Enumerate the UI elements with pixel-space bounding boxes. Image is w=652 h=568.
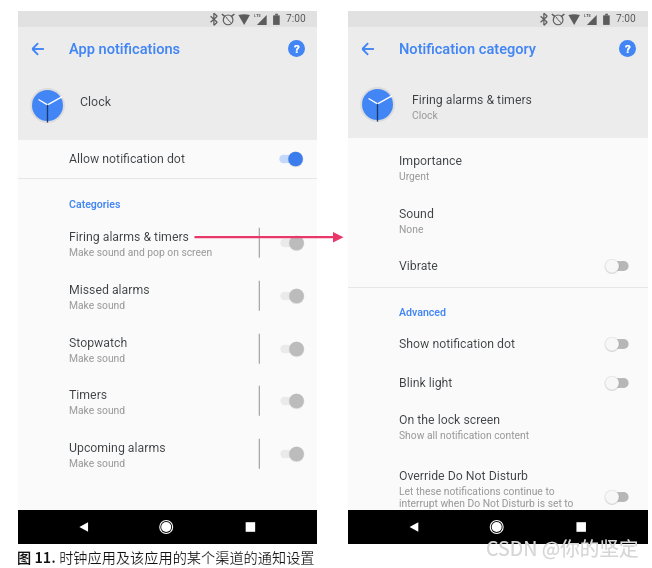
staticText: interrupt when Do Not Disturb is set to	[399, 497, 574, 509]
button[interactable]: Importance	[348, 153, 648, 198]
staticText: App notifications	[69, 40, 181, 57]
button[interactable]: Navigate up	[355, 36, 381, 62]
staticText: Clock	[412, 109, 438, 121]
button[interactable]: Upcoming alarms	[280, 446, 304, 462]
button[interactable]: Timers	[280, 393, 304, 409]
button[interactable]: Navigate up	[25, 36, 51, 62]
staticText: ?	[294, 42, 300, 55]
staticText: Override Do Not Disturb	[399, 469, 528, 483]
staticText: 7:00	[616, 13, 636, 25]
button[interactable]: Allow notification dot	[279, 151, 303, 167]
staticText: Categories	[69, 198, 121, 210]
button[interactable]: Missed alarms	[18, 282, 317, 330]
staticText: Show notification dot	[399, 337, 515, 351]
staticText: Notification category	[399, 40, 536, 57]
staticText: Sound	[399, 207, 434, 221]
button[interactable]: Recents	[229, 510, 269, 544]
button[interactable]: Show notification dot	[348, 332, 648, 366]
staticText: Make sound	[69, 352, 126, 364]
button[interactable]: Recents	[560, 510, 600, 544]
button[interactable]: On the lock screen	[348, 412, 648, 457]
button[interactable]: Sound	[348, 206, 648, 251]
button[interactable]: Timers	[18, 387, 317, 435]
button[interactable]: Firing alarms & timers	[348, 70, 648, 138]
button[interactable]: Clock	[18, 70, 317, 140]
staticText: None	[399, 223, 424, 235]
button[interactable]: Override Do Not Disturb	[348, 468, 648, 512]
button[interactable]: Firing alarms & timers	[280, 235, 304, 251]
button[interactable]: Stopwatch	[280, 341, 304, 357]
staticText: Firing alarms & timers	[69, 230, 189, 244]
button[interactable]: Vibrate	[605, 258, 629, 274]
staticText: Upcoming alarms	[69, 441, 166, 455]
button[interactable]: Allow notification dot	[18, 140, 317, 178]
staticText: Let these notifications continue to	[399, 485, 555, 497]
staticText: 7:00	[286, 13, 306, 25]
button[interactable]: Missed alarms	[280, 288, 304, 304]
staticText: Stopwatch	[69, 336, 128, 350]
staticText: Vibrate	[399, 259, 438, 273]
staticText: Make sound and pop on screen	[69, 246, 213, 258]
button[interactable]: Firing alarms & timers	[18, 229, 317, 277]
staticText: Make sound	[69, 404, 126, 416]
staticText: Timers	[69, 388, 108, 402]
button[interactable]: Blink light	[348, 371, 648, 405]
staticText: Importance	[399, 154, 462, 168]
staticText: LTE	[254, 13, 262, 18]
staticText: Make sound	[69, 299, 126, 311]
staticText: Clock	[80, 94, 111, 109]
button[interactable]: Home	[148, 510, 188, 544]
staticText: Make sound	[69, 457, 126, 469]
button[interactable]: Back	[395, 510, 435, 544]
staticText: Show all notification content	[399, 429, 530, 441]
button[interactable]: Help	[619, 40, 636, 57]
staticText: Urgent	[399, 170, 430, 182]
button[interactable]: Upcoming alarms	[18, 440, 317, 488]
button[interactable]: Blink light	[605, 375, 629, 391]
button[interactable]: Help	[288, 40, 305, 57]
button[interactable]: Show notification dot	[605, 336, 629, 352]
button[interactable]: Home	[478, 510, 518, 544]
button[interactable]: Override Do Not Disturb	[605, 489, 629, 505]
staticText: Allow notification dot	[69, 152, 185, 166]
staticText: 图 11.	[17, 547, 56, 568]
button[interactable]: Back	[65, 510, 105, 544]
button[interactable]: Vibrate	[348, 254, 648, 290]
staticText: 时钟应用及该应用的某个渠道的通知设置	[56, 547, 315, 568]
staticText: On the lock screen	[399, 413, 501, 427]
staticText: Firing alarms & timers	[412, 93, 532, 107]
staticText: ?	[625, 42, 631, 55]
staticText: Blink light	[399, 376, 453, 390]
staticText: LTE	[584, 13, 592, 18]
button[interactable]: Stopwatch	[18, 335, 317, 383]
staticText: CSDN @你的坚定	[486, 533, 639, 561]
staticText: Missed alarms	[69, 283, 150, 297]
staticText: Advanced	[399, 306, 446, 318]
